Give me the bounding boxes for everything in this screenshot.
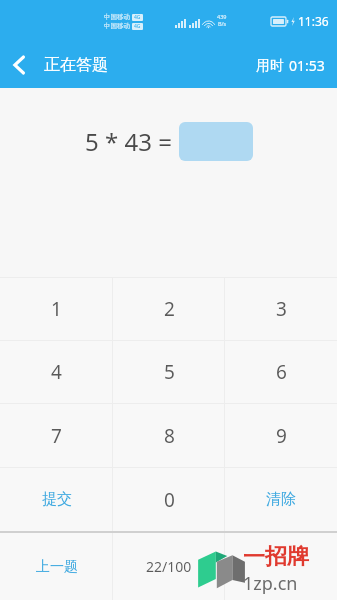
- staticText: 提交: [42, 490, 72, 509]
- staticText: 7: [51, 423, 62, 449]
- button[interactable]: 1: [0, 278, 113, 340]
- staticText: 8: [164, 423, 175, 449]
- button[interactable]: 7: [0, 404, 113, 467]
- button[interactable]: 9: [225, 404, 337, 467]
- staticText: 11:36: [298, 13, 329, 29]
- staticText: 中国移动: [104, 13, 130, 21]
- staticText: 439: [217, 13, 227, 20]
- button[interactable]: 用时: [244, 48, 337, 83]
- staticText: 1: [51, 296, 62, 322]
- staticText: 22/100: [146, 557, 192, 576]
- button[interactable]: 清除: [225, 468, 337, 531]
- button[interactable]: 3: [225, 278, 337, 340]
- button[interactable]: 5: [113, 341, 225, 403]
- button[interactable]: 0: [113, 468, 225, 531]
- button[interactable]: 6: [225, 341, 337, 403]
- staticText: 4G: [134, 14, 141, 21]
- staticText: 5: [164, 359, 175, 385]
- button[interactable]: 2: [113, 278, 225, 340]
- staticText: 4G: [134, 23, 141, 30]
- staticText: 一招牌: [243, 543, 309, 571]
- button[interactable]: [225, 533, 337, 600]
- staticText: 用时: [256, 57, 284, 75]
- staticText: 1zp.cn: [243, 571, 298, 596]
- staticText: 正在答题: [44, 55, 108, 75]
- button[interactable]: Back: [0, 47, 34, 83]
- staticText: B/s: [218, 20, 227, 27]
- staticText: 0: [164, 487, 175, 513]
- staticText: 9: [276, 423, 287, 449]
- staticText: 5 * 43 =: [85, 125, 179, 158]
- staticText: 4: [51, 359, 62, 385]
- button[interactable]: 4: [0, 341, 113, 403]
- button[interactable]: 提交: [0, 468, 113, 531]
- button[interactable]: 8: [113, 404, 225, 467]
- button[interactable]: [179, 122, 253, 161]
- staticText: 01:53: [289, 56, 325, 75]
- staticText: 中国移动: [104, 22, 130, 30]
- staticText: 上一题: [36, 558, 78, 576]
- staticText: 2: [164, 296, 175, 322]
- button[interactable]: 上一题: [0, 533, 113, 600]
- staticText: 6: [276, 359, 287, 385]
- staticText: 清除: [266, 490, 296, 509]
- staticText: 3: [276, 296, 287, 322]
